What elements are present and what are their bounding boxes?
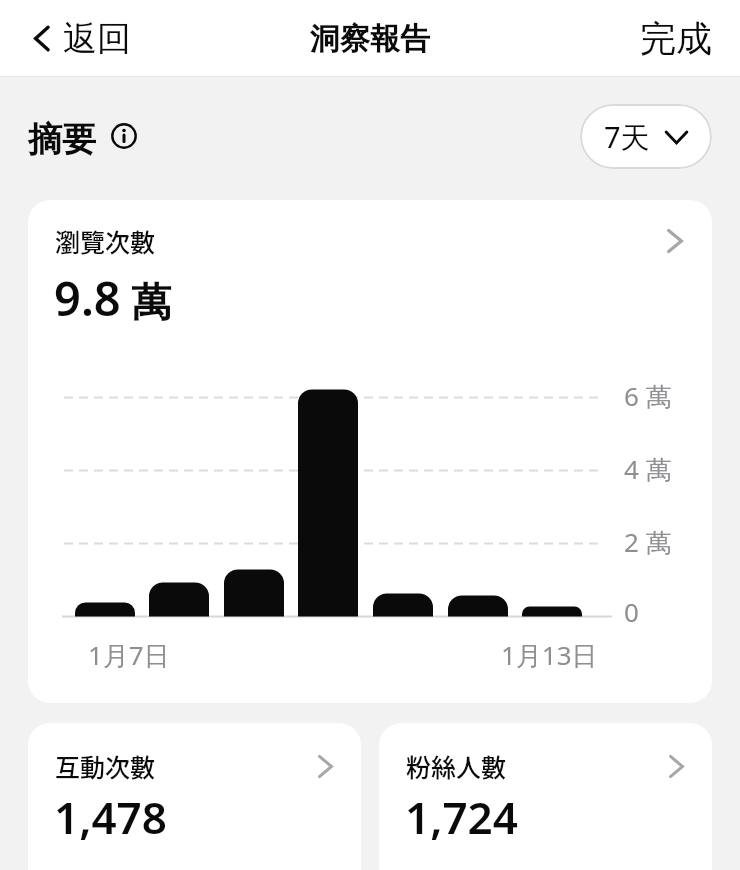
staticText: 返回: [63, 17, 131, 60]
staticText: 9.8 萬: [54, 266, 172, 330]
button[interactable]: 完成: [640, 16, 712, 61]
button[interactable]: 返回: [34, 17, 131, 60]
staticText: 1月7日: [88, 637, 170, 673]
staticText: 6 萬: [624, 378, 672, 414]
staticText: 互動次數: [55, 748, 156, 784]
staticText: 1,478: [54, 787, 167, 847]
staticText: 2 萬: [624, 524, 672, 560]
staticText: 洞察報告: [310, 20, 430, 58]
button[interactable]: 互動次數: [28, 723, 361, 870]
staticText: 瀏覽次數: [55, 223, 156, 259]
staticText: 0: [624, 594, 639, 629]
staticText: 摘要: [28, 118, 96, 161]
button[interactable]: 瀏覽次數: [28, 200, 712, 703]
staticText: 粉絲人數: [406, 748, 507, 784]
button[interactable]: 7天: [580, 104, 712, 169]
button[interactable]: 粉絲人數: [379, 723, 712, 870]
staticText: 1月13日: [501, 637, 598, 673]
staticText: 7天: [604, 117, 650, 157]
staticText: 1,724: [405, 787, 518, 847]
staticText: 4 萬: [624, 451, 672, 487]
